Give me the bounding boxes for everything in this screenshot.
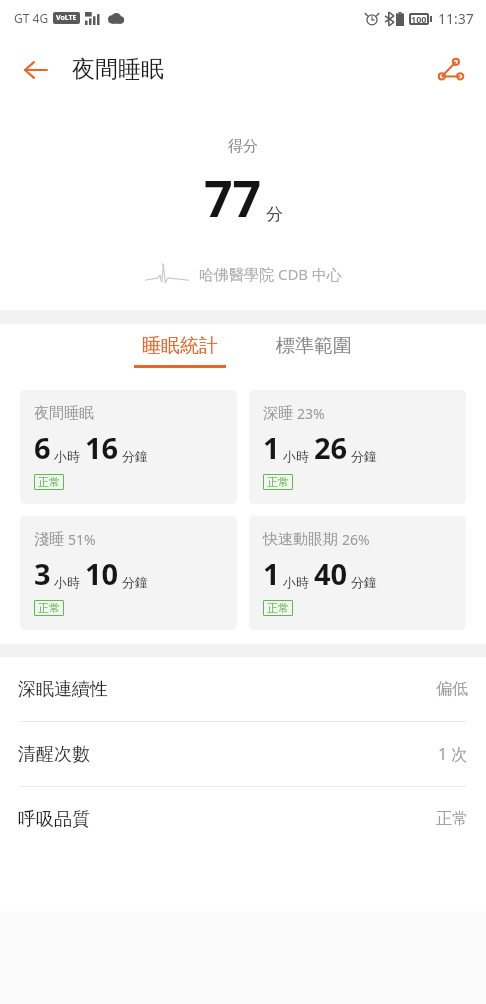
- staticText: 夜間睡眠: [34, 404, 94, 423]
- button[interactable]: 夜間睡眠: [20, 390, 237, 504]
- staticText: 正常: [38, 601, 60, 615]
- staticText: 1: [263, 428, 280, 467]
- staticText: 得分: [228, 137, 258, 156]
- staticText: 夜間睡眠: [72, 55, 164, 84]
- staticText: 16: [85, 428, 119, 467]
- button[interactable]: 快速動眼期: [249, 516, 466, 630]
- staticText: 睡眠統計: [142, 334, 218, 358]
- staticText: 正常: [38, 475, 60, 489]
- button[interactable]: Share: [422, 42, 478, 98]
- staticText: 26: [314, 428, 348, 467]
- staticText: 深睡: [263, 404, 293, 423]
- staticText: VoLTE: [56, 13, 77, 23]
- button[interactable]: 深眠連續性: [0, 657, 486, 721]
- button[interactable]: 深睡: [249, 390, 466, 504]
- staticText: 正常: [267, 601, 289, 615]
- button[interactable]: 呼吸品質: [0, 787, 486, 851]
- staticText: 小時: [54, 448, 80, 464]
- staticText: 呼吸品質: [18, 808, 90, 831]
- button[interactable]: Back: [8, 42, 64, 98]
- staticText: 分鐘: [122, 448, 148, 464]
- staticText: 6: [34, 428, 51, 467]
- staticText: 分鐘: [351, 448, 377, 464]
- staticText: 淺睡: [34, 530, 64, 549]
- staticText: 正常: [267, 475, 289, 489]
- staticText: 清醒次數: [18, 743, 90, 766]
- button[interactable]: 清醒次數: [0, 722, 486, 786]
- staticText: 23%: [297, 404, 325, 423]
- staticText: 標準範圍: [276, 334, 352, 358]
- staticText: 1: [263, 554, 280, 593]
- staticText: GT 4G: [14, 10, 49, 26]
- button[interactable]: 睡眠統計: [124, 324, 236, 378]
- staticText: 1 次: [438, 743, 468, 765]
- staticText: 快速動眼期: [263, 530, 338, 549]
- staticText: 11:37: [438, 9, 474, 28]
- staticText: 小時: [283, 574, 309, 590]
- staticText: 深眠連續性: [18, 678, 108, 701]
- staticText: 分鐘: [122, 574, 148, 590]
- staticText: 77: [204, 164, 262, 232]
- staticText: 10: [85, 554, 119, 593]
- button[interactable]: 標準範圍: [266, 324, 362, 378]
- staticText: 40: [314, 554, 348, 593]
- staticText: 100: [411, 13, 427, 25]
- staticText: 分: [266, 204, 283, 225]
- button[interactable]: 淺睡: [20, 516, 237, 630]
- staticText: 小時: [54, 574, 80, 590]
- staticText: 哈佛醫學院 CDB 中心: [199, 264, 342, 284]
- staticText: 小時: [283, 448, 309, 464]
- staticText: 3: [34, 554, 51, 593]
- staticText: 正常: [436, 809, 468, 829]
- staticText: 偏低: [436, 679, 468, 699]
- staticText: 26%: [342, 530, 370, 549]
- staticText: 分鐘: [351, 574, 377, 590]
- staticText: 51%: [68, 530, 96, 549]
